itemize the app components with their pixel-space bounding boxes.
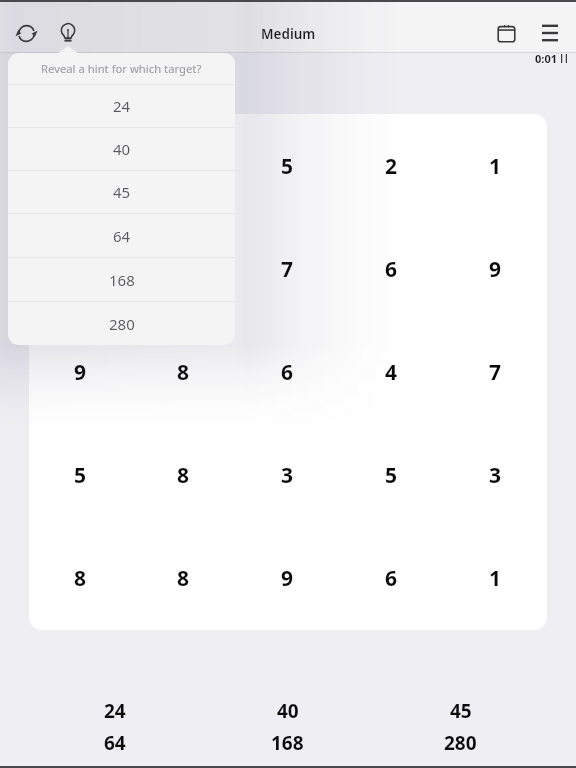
- button[interactable]: 8: [29, 527, 132, 630]
- staticText: 9: [489, 255, 502, 284]
- button[interactable]: 2: [339, 114, 443, 218]
- button[interactable]: 168: [8, 258, 235, 301]
- staticText: 5: [385, 461, 398, 490]
- staticText: 7: [489, 358, 502, 387]
- staticText: 8: [177, 461, 190, 490]
- staticText: Reveal a hint for which target?: [41, 61, 202, 76]
- staticText: 7: [281, 255, 294, 284]
- staticText: 45: [450, 698, 472, 724]
- staticText: 64: [104, 730, 126, 756]
- staticText: 1: [489, 564, 502, 593]
- button[interactable]: 9: [443, 218, 547, 321]
- button[interactable]: 5: [235, 114, 339, 218]
- button[interactable]: 7: [235, 218, 339, 321]
- staticText: 8: [177, 358, 190, 387]
- button[interactable]: 4: [339, 321, 443, 424]
- button[interactable]: 3: [235, 424, 339, 527]
- button[interactable]: [29, 218, 132, 321]
- button[interactable]: 64: [29, 730, 201, 756]
- button[interactable]: Restart: [4, 11, 48, 55]
- staticText: 24: [113, 96, 131, 116]
- button[interactable]: 7: [443, 321, 547, 424]
- button[interactable]: Hint: [46, 11, 90, 55]
- staticText: 5: [281, 152, 294, 181]
- button[interactable]: Menu: [528, 11, 572, 55]
- staticText: 2: [385, 152, 398, 181]
- button[interactable]: 9: [29, 321, 132, 424]
- button[interactable]: 5: [339, 424, 443, 527]
- staticText: 6: [281, 358, 294, 387]
- staticText: 6: [385, 564, 398, 593]
- staticText: 1: [489, 152, 502, 181]
- staticText: 45: [113, 182, 131, 202]
- staticText: 64: [113, 226, 131, 246]
- staticText: 40: [113, 139, 131, 159]
- staticText: 8: [74, 564, 87, 593]
- button[interactable]: 9: [235, 527, 339, 630]
- staticText: 280: [444, 730, 477, 756]
- button[interactable]: 168: [201, 730, 374, 756]
- staticText: 3: [281, 461, 294, 490]
- button[interactable]: 64: [8, 214, 235, 257]
- button[interactable]: 280: [8, 302, 235, 345]
- button[interactable]: 8: [132, 527, 235, 630]
- staticText: 8: [177, 564, 190, 593]
- staticText: Medium: [261, 25, 316, 43]
- button[interactable]: 280: [374, 730, 547, 756]
- button[interactable]: 24: [8, 85, 235, 127]
- button[interactable]: [29, 114, 132, 218]
- button[interactable]: 3: [443, 424, 547, 527]
- button[interactable]: [132, 218, 235, 321]
- staticText: 3: [489, 461, 502, 490]
- staticText: 6: [385, 255, 398, 284]
- button[interactable]: 8: [132, 321, 235, 424]
- button[interactable]: 5: [29, 424, 132, 527]
- button[interactable]: 1: [443, 114, 547, 218]
- staticText: 0:01: [535, 51, 557, 65]
- staticText: 9: [74, 358, 87, 387]
- button[interactable]: 45: [374, 698, 547, 724]
- staticText: 168: [271, 730, 304, 756]
- button[interactable]: 8: [132, 424, 235, 527]
- staticText: 280: [109, 314, 135, 334]
- button[interactable]: 45: [8, 171, 235, 213]
- button[interactable]: 1: [443, 527, 547, 630]
- staticText: 168: [109, 270, 135, 290]
- staticText: 4: [385, 358, 398, 387]
- button[interactable]: 40: [201, 698, 374, 724]
- button[interactable]: 40: [8, 128, 235, 170]
- button[interactable]: 6: [235, 321, 339, 424]
- button[interactable]: 6: [339, 527, 443, 630]
- button[interactable]: 6: [339, 218, 443, 321]
- staticText: 24: [104, 698, 126, 724]
- staticText: 5: [74, 461, 87, 490]
- staticText: 40: [277, 698, 299, 724]
- button[interactable]: History: [484, 11, 528, 55]
- staticText: 9: [281, 564, 294, 593]
- button[interactable]: 24: [29, 698, 201, 724]
